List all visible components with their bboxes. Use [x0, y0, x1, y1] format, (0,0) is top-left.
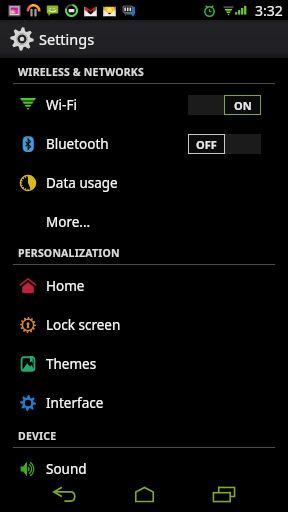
button[interactable]: Lock screen: [0, 305, 288, 344]
staticText: More...: [46, 213, 91, 231]
button[interactable]: ON: [188, 95, 261, 115]
button[interactable]: Back: [33, 476, 95, 512]
staticText: 3:32: [255, 1, 283, 20]
staticText: Bluetooth: [46, 135, 109, 153]
button[interactable]: Bluetooth: [0, 124, 288, 163]
staticText: Data usage: [46, 174, 118, 192]
button[interactable]: More...: [0, 202, 288, 241]
button[interactable]: Interface: [0, 383, 288, 422]
staticText: OFF: [196, 137, 217, 152]
button[interactable]: Home: [0, 266, 288, 305]
staticText: WIRELESS & NETWORKS: [18, 65, 144, 79]
button[interactable]: Sound: [0, 449, 288, 488]
staticText: Wi-Fi: [46, 96, 77, 114]
staticText: Lock screen: [46, 316, 121, 334]
button[interactable]: Themes: [0, 344, 288, 383]
button[interactable]: OFF: [188, 134, 261, 154]
button[interactable]: Data usage: [0, 163, 288, 202]
staticText: PERSONALIZATION: [18, 246, 120, 260]
button[interactable]: Recent apps: [193, 476, 255, 512]
button[interactable]: Home: [113, 476, 175, 512]
staticText: Themes: [46, 355, 97, 373]
staticText: ON: [234, 98, 252, 113]
staticText: Settings: [39, 29, 95, 49]
button[interactable]: Wi-Fi: [0, 85, 288, 124]
staticText: DEVICE: [18, 429, 57, 443]
staticText: Home: [46, 277, 85, 295]
staticText: Interface: [46, 394, 104, 412]
staticText: Sound: [46, 460, 87, 478]
